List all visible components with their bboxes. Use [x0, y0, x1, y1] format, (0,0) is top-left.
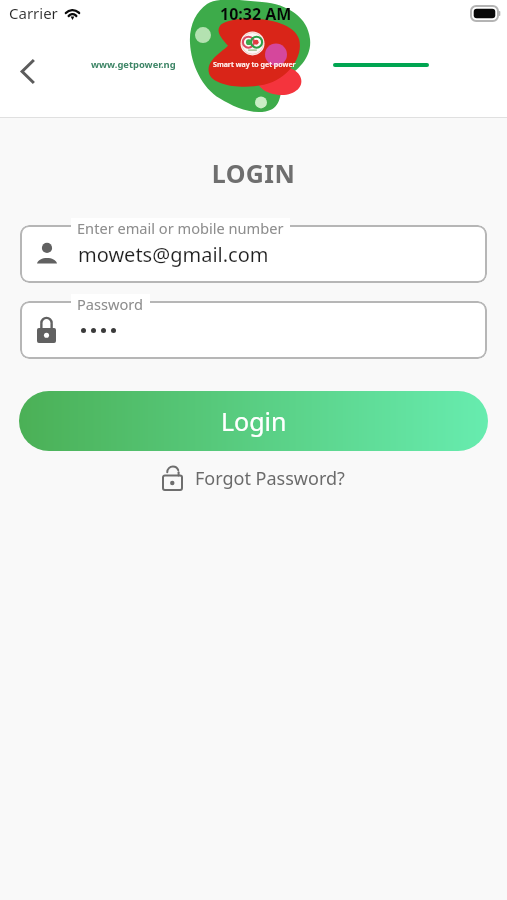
staticText: Password [77, 294, 144, 314]
staticText: Carrier [9, 3, 58, 23]
staticText: Forgot Password? [195, 466, 345, 491]
button[interactable] [20, 225, 487, 283]
staticText: www.getpower.ng [91, 58, 176, 71]
staticText: Login [221, 404, 287, 438]
staticText: Smart way to get power [213, 59, 296, 69]
staticText: mowets@gmail.com [78, 241, 269, 268]
staticText: LOGIN [0, 156, 507, 190]
button[interactable]: Forgot Password? [154, 461, 353, 495]
staticText: Enter email or mobile number [77, 218, 284, 238]
button[interactable]: Back [6, 49, 50, 93]
button[interactable] [20, 301, 487, 359]
staticText: 10:32 AM [220, 3, 292, 25]
button[interactable]: Login [19, 391, 488, 451]
